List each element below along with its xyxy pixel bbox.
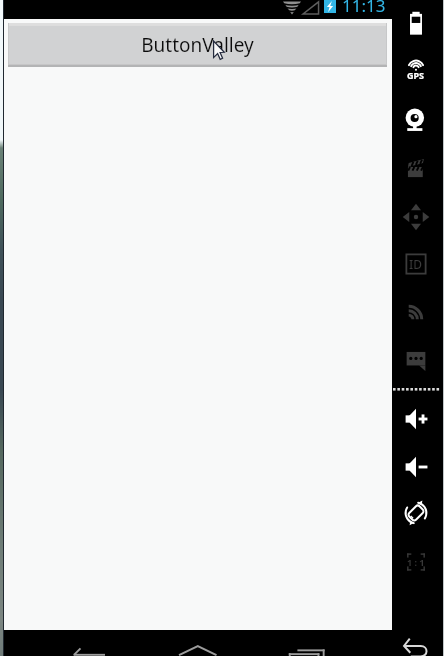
staticText: ButtonValley	[141, 32, 254, 58]
button[interactable]: Recent apps	[244, 630, 340, 656]
button[interactable]: Record screen	[403, 155, 429, 181]
button[interactable]: Volume down	[403, 454, 429, 480]
button[interactable]: GPS location	[403, 58, 429, 84]
button[interactable]: Device ID	[403, 251, 429, 277]
button[interactable]: Messages	[403, 347, 429, 373]
button[interactable]: Zoom to actual size	[403, 549, 429, 575]
button[interactable]: Cellular	[403, 299, 429, 325]
button[interactable]: Back	[42, 630, 130, 656]
button[interactable]: Battery	[403, 11, 429, 37]
staticText: ID	[409, 256, 423, 272]
staticText: 11:13	[342, 0, 386, 13]
button[interactable]: ButtonValley	[8, 23, 387, 67]
staticText: GPS	[407, 69, 425, 81]
button[interactable]: Back	[403, 633, 429, 656]
staticText: 1 : 1	[407, 556, 425, 568]
button[interactable]: Camera	[403, 106, 429, 132]
button[interactable]: D-Pad	[403, 204, 429, 230]
button[interactable]: Home	[144, 630, 232, 656]
button[interactable]: Volume up	[403, 406, 429, 432]
button[interactable]: Rotate	[403, 501, 429, 527]
